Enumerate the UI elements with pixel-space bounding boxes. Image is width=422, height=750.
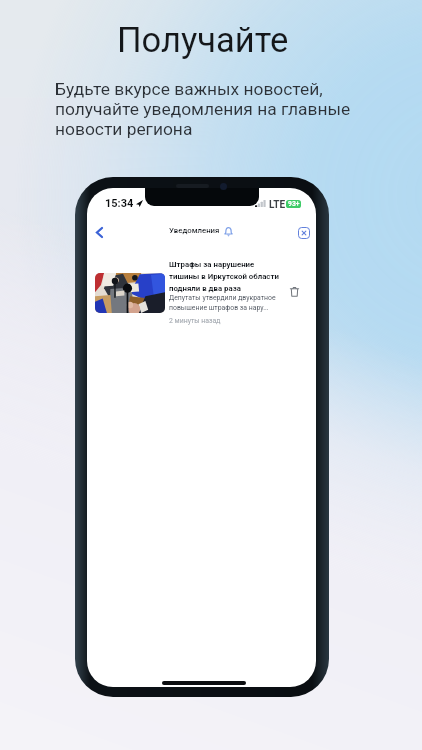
button[interactable]: Удалить <box>285 283 303 301</box>
staticText: LTE <box>269 199 286 211</box>
button[interactable]: Назад <box>90 221 108 243</box>
staticText: 15:34 <box>105 197 134 210</box>
staticText: Депутаты утвердили двукратное повышение … <box>169 294 276 311</box>
staticText: Штрафы за нарушение тишины в Иркутской о… <box>169 260 279 293</box>
button[interactable]: Уведомления <box>224 227 233 237</box>
staticText: Будьте вкурсе важных новостей, получайте… <box>55 79 351 139</box>
staticText: 2 минуты назад <box>169 317 221 325</box>
button[interactable]: Закрыть <box>293 222 314 243</box>
staticText: 93+ <box>288 200 300 208</box>
button[interactable]: Уведомления <box>169 226 220 235</box>
button[interactable]: Штрафы за нарушение тишины в Иркутской о… <box>87 258 316 330</box>
staticText: Получайте <box>117 20 289 60</box>
